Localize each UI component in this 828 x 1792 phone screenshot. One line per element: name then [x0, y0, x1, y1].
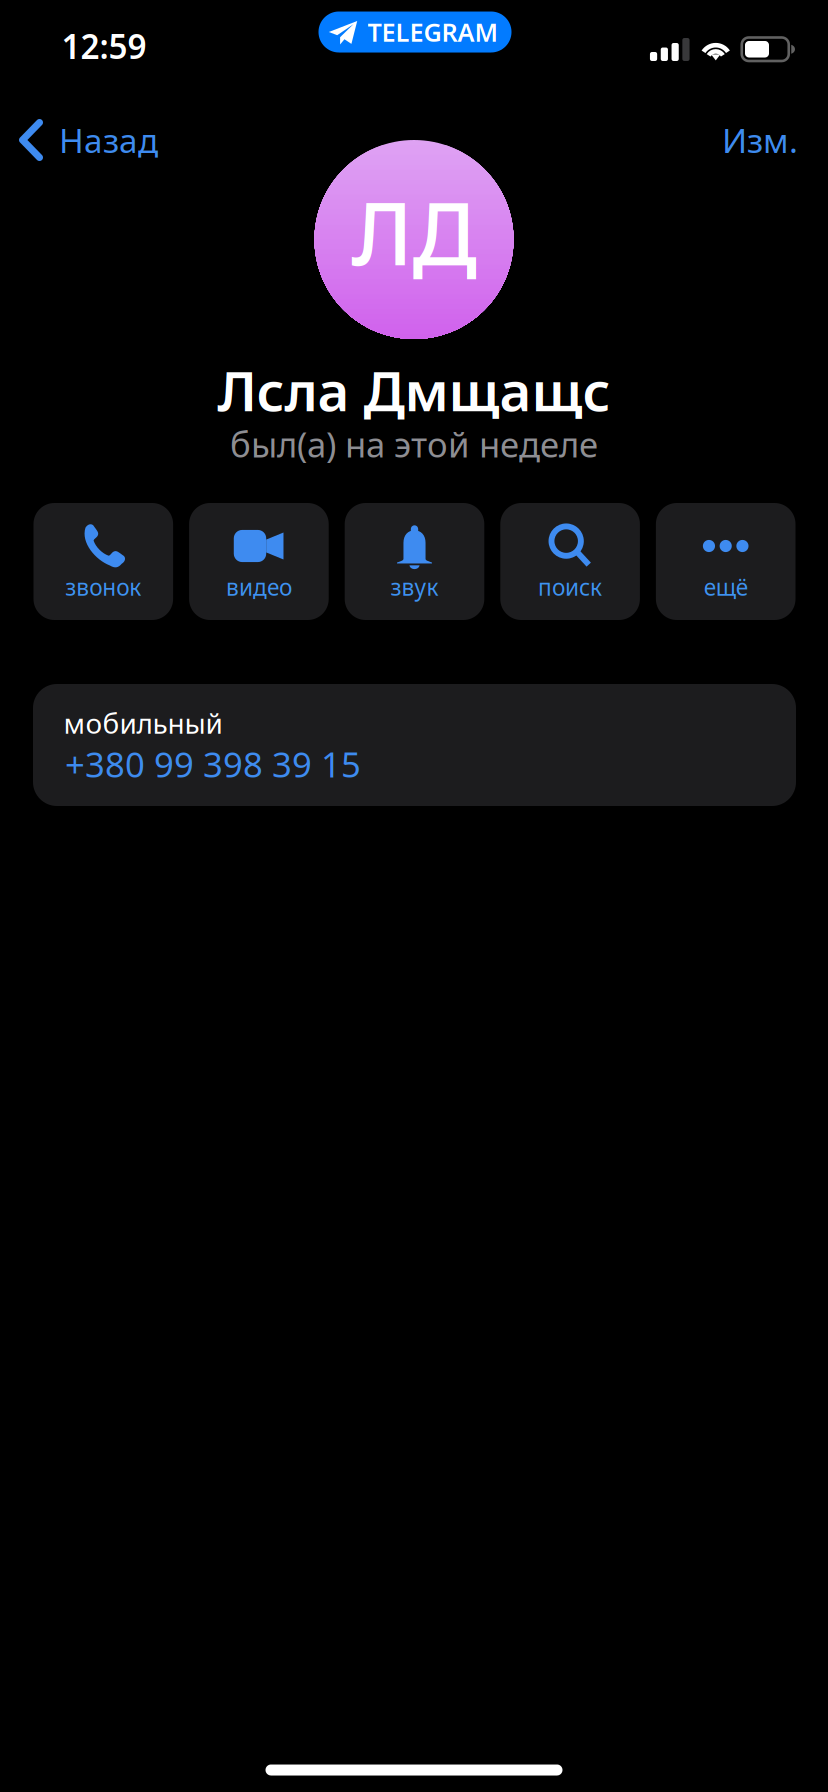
staticText: мобильный	[63, 704, 222, 742]
staticText: Назад	[59, 118, 158, 162]
staticText: звук	[390, 572, 438, 602]
button[interactable]: Назад	[2, 102, 178, 178]
staticText: +380 99 398 39 15	[65, 741, 361, 787]
button[interactable]: видео	[189, 503, 329, 620]
staticText: ещё	[704, 572, 748, 602]
button[interactable]: звук	[345, 503, 484, 620]
staticText: Изм.	[722, 118, 798, 162]
button[interactable]: Изм.	[700, 102, 820, 178]
staticText: звонок	[65, 572, 141, 602]
staticText: ЛД	[351, 174, 476, 289]
staticText: Лсла Дмщащс	[217, 354, 610, 426]
button[interactable]: мобильный	[33, 684, 796, 806]
staticText: был(а) на этой неделе	[230, 421, 598, 467]
button[interactable]: поиск	[500, 503, 640, 620]
button[interactable]: звонок	[33, 503, 173, 620]
staticText: поиск	[538, 572, 602, 602]
staticText: TELEGRAM	[367, 15, 498, 49]
staticText: видео	[226, 572, 292, 602]
button[interactable]: ещё	[656, 503, 795, 620]
staticText: 12:59	[61, 24, 146, 68]
